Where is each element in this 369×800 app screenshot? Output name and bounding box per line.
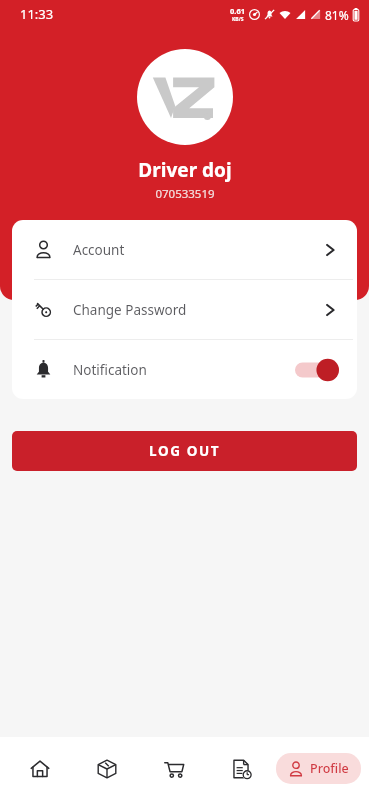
other: Open [321, 301, 339, 319]
staticText: KB/S [232, 16, 244, 23]
staticText: Driver doj [138, 157, 232, 183]
staticText: Change Password [73, 301, 321, 319]
button[interactable]: Profile [276, 753, 361, 784]
staticText: Profile [310, 760, 349, 777]
button[interactable]: Notification [12, 340, 357, 399]
staticText: 070533519 [155, 186, 215, 202]
button[interactable]: History [207, 737, 274, 800]
staticText: 11:33 [20, 5, 54, 23]
staticText: 0.61 [230, 6, 245, 16]
staticText: 81% [325, 7, 349, 23]
button[interactable]: Change Password [12, 280, 357, 339]
button[interactable]: Account [12, 220, 357, 279]
button[interactable]: Notification toggle [295, 358, 339, 382]
staticText: Account [73, 241, 321, 259]
button[interactable]: LOG OUT [12, 431, 357, 471]
button[interactable]: Cart [140, 737, 207, 800]
button[interactable]: Home [6, 737, 73, 800]
staticText: LOG OUT [149, 442, 221, 460]
staticText: Notification [73, 361, 295, 379]
button[interactable]: Orders [73, 737, 140, 800]
other: Open [321, 241, 339, 259]
